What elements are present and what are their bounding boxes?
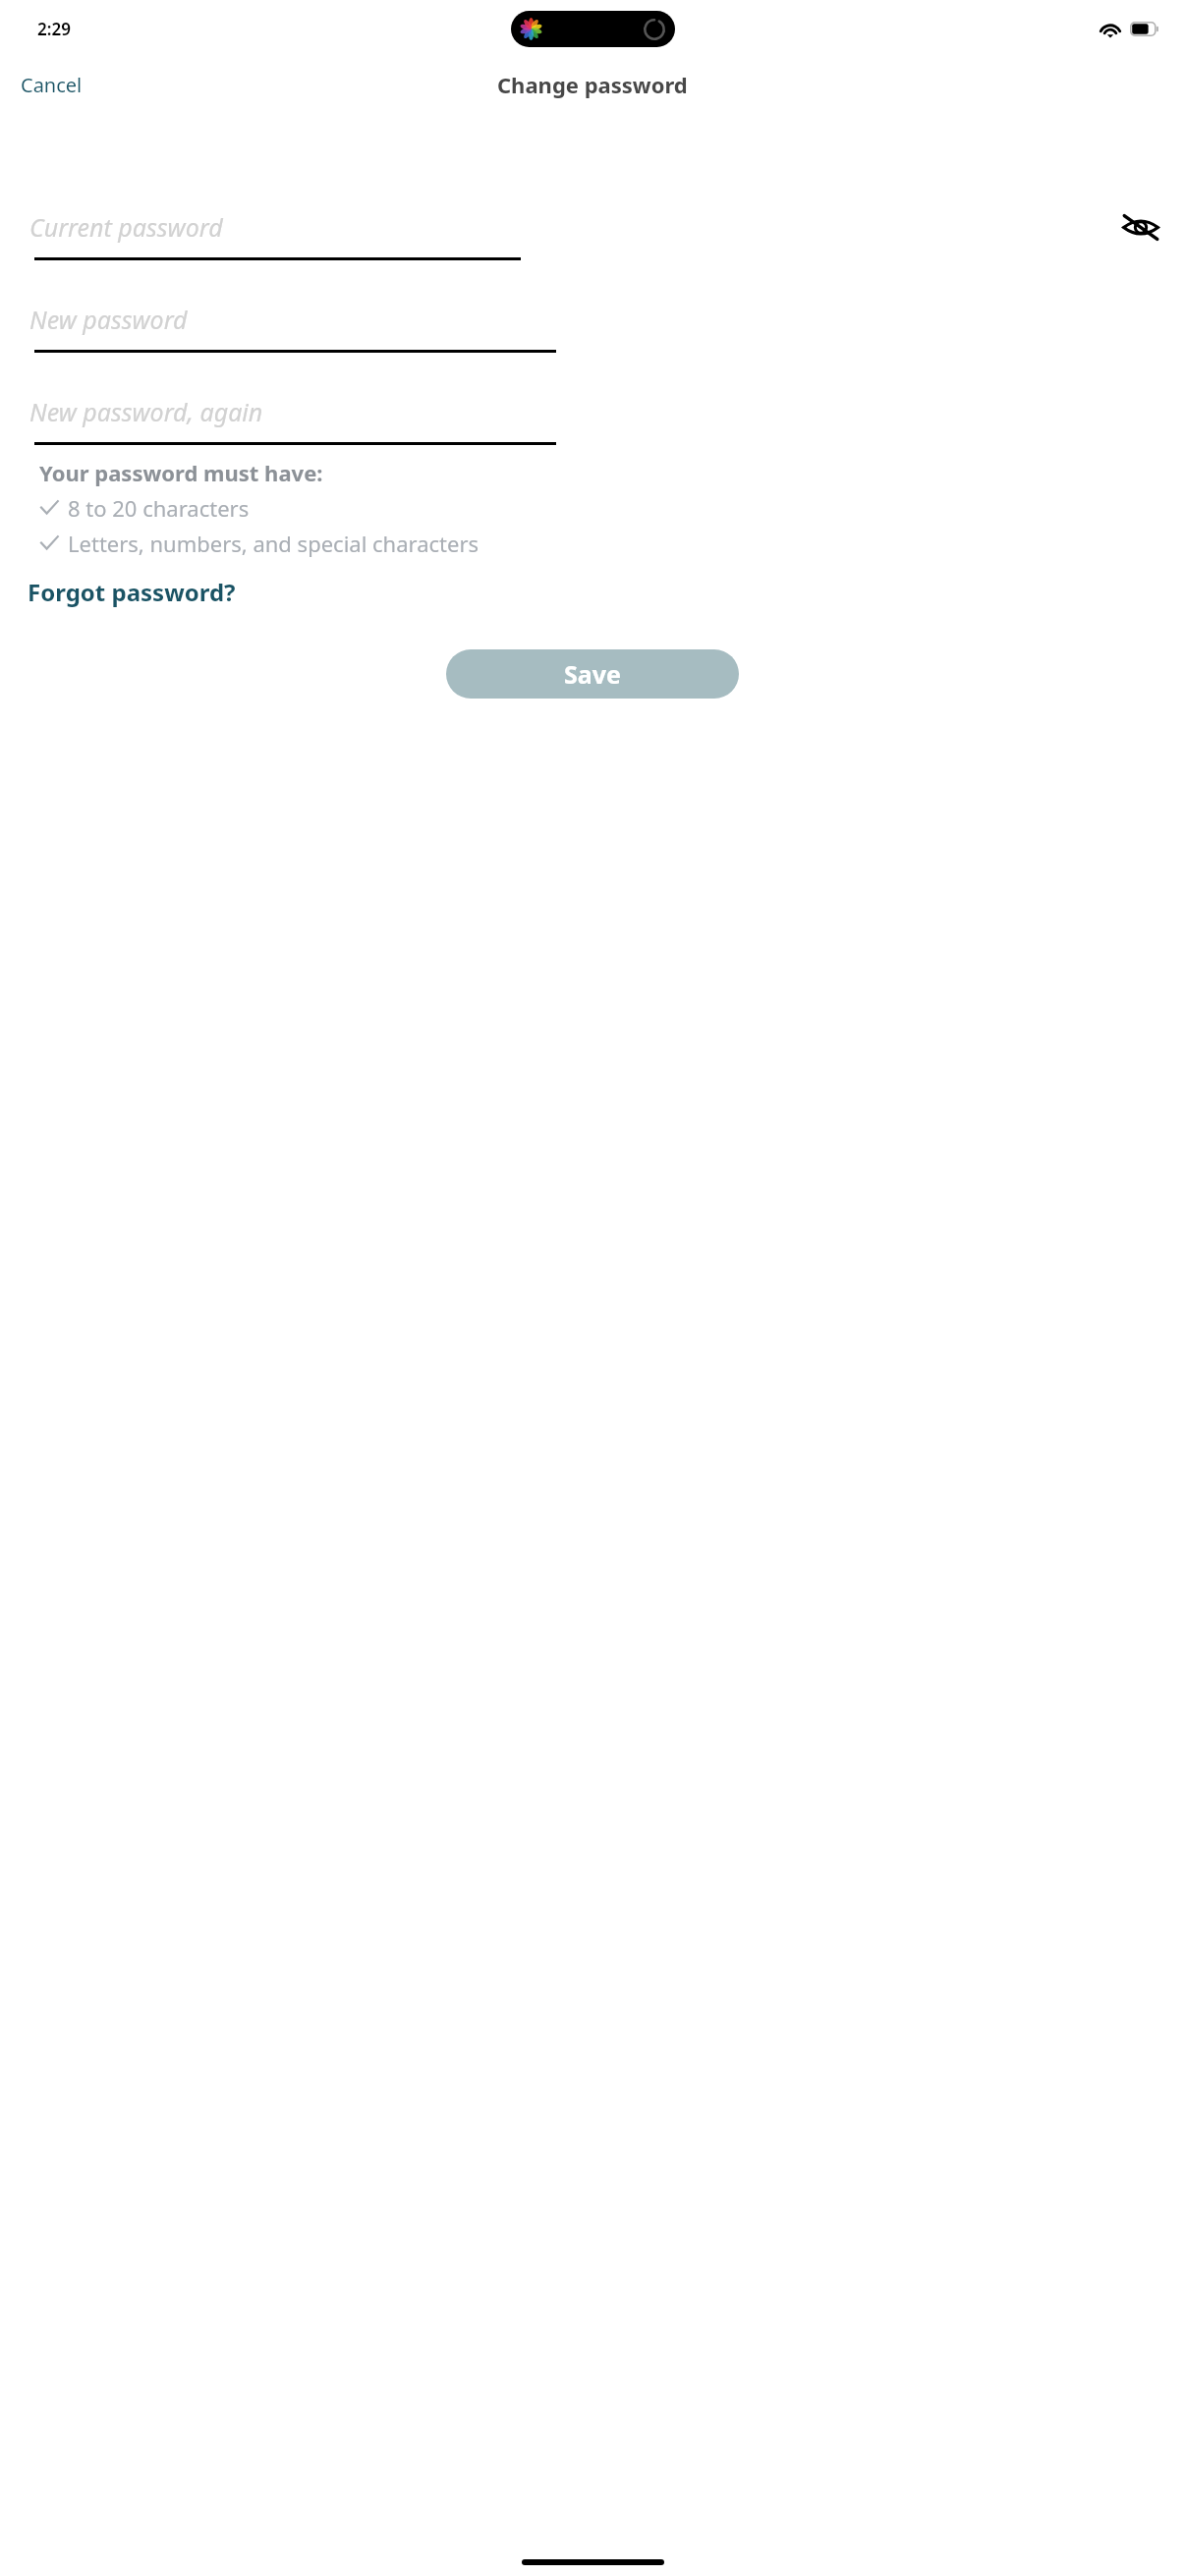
staticText: Letters, numbers, and special characters — [68, 529, 480, 558]
button[interactable]: Hide password — [1116, 202, 1165, 252]
staticText: Change password — [497, 70, 688, 99]
staticText: Cancel — [21, 72, 83, 98]
staticText: 8 to 20 characters — [68, 493, 250, 523]
button[interactable]: Forgot password? — [0, 570, 252, 614]
staticText: New password, again — [29, 395, 263, 428]
staticText: Your password must have: — [39, 458, 323, 487]
button[interactable]: Cancel — [0, 64, 103, 106]
staticText: Current password — [29, 210, 223, 244]
button[interactable]: Save — [446, 649, 739, 699]
staticText: New password — [29, 303, 188, 336]
staticText: 2:29 — [37, 18, 71, 40]
staticText: Forgot password? — [28, 576, 236, 608]
staticText: Save — [564, 657, 621, 691]
